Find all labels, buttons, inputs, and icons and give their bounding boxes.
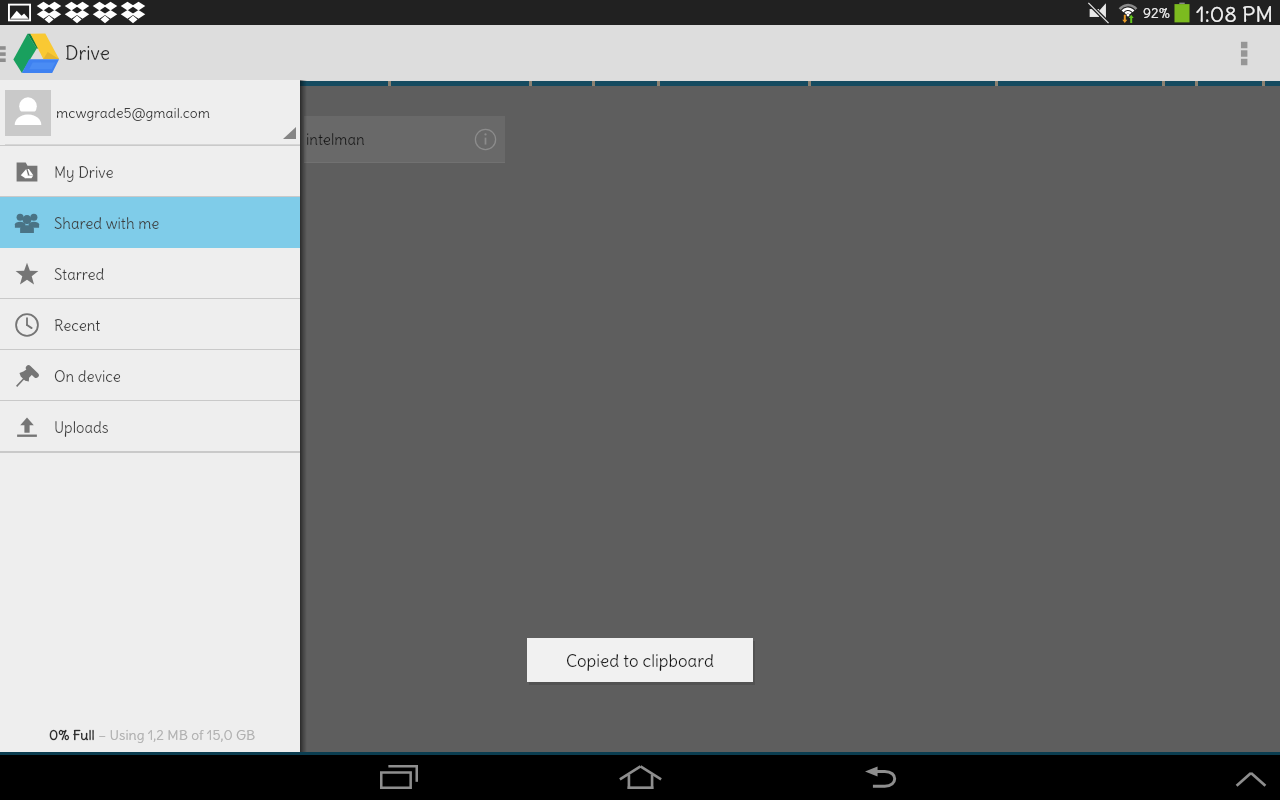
button[interactable]: Home <box>610 755 670 800</box>
button[interactable]: intelman <box>304 116 505 162</box>
staticText: 1:08 PM <box>1196 0 1274 25</box>
staticText: intelman <box>306 130 365 149</box>
button[interactable]: mcwgrade5@gmail.com <box>0 80 300 145</box>
button[interactable]: Expand navigation bar <box>1222 755 1280 800</box>
staticText: Copied to clipboard <box>566 650 714 671</box>
button[interactable]: On device <box>0 350 300 401</box>
button[interactable]: Open navigation drawer <box>0 36 21 70</box>
staticText: mcwgrade5@gmail.com <box>56 104 210 122</box>
button[interactable]: Shared with me <box>0 197 300 248</box>
staticText: Uploads <box>54 418 109 437</box>
staticText: Recent <box>54 316 101 335</box>
button[interactable]: Back <box>851 755 911 800</box>
button[interactable]: More options <box>1227 36 1261 70</box>
staticText: Drive <box>65 41 110 65</box>
staticText: 0% Full <box>49 726 95 744</box>
button[interactable]: File details <box>471 125 499 153</box>
staticText: – Using 1,2 MB of 15,0 GB <box>95 726 256 744</box>
staticText: Starred <box>54 265 105 284</box>
button[interactable]: Uploads <box>0 401 300 452</box>
staticText: Shared with me <box>54 214 160 233</box>
staticText: My Drive <box>54 163 114 182</box>
staticText: 92% <box>1143 4 1170 22</box>
staticText: On device <box>54 367 121 386</box>
button[interactable]: My Drive <box>0 146 300 197</box>
button[interactable]: Starred <box>0 248 300 299</box>
button[interactable]: Recent apps <box>369 755 429 800</box>
button[interactable]: Recent <box>0 299 300 350</box>
